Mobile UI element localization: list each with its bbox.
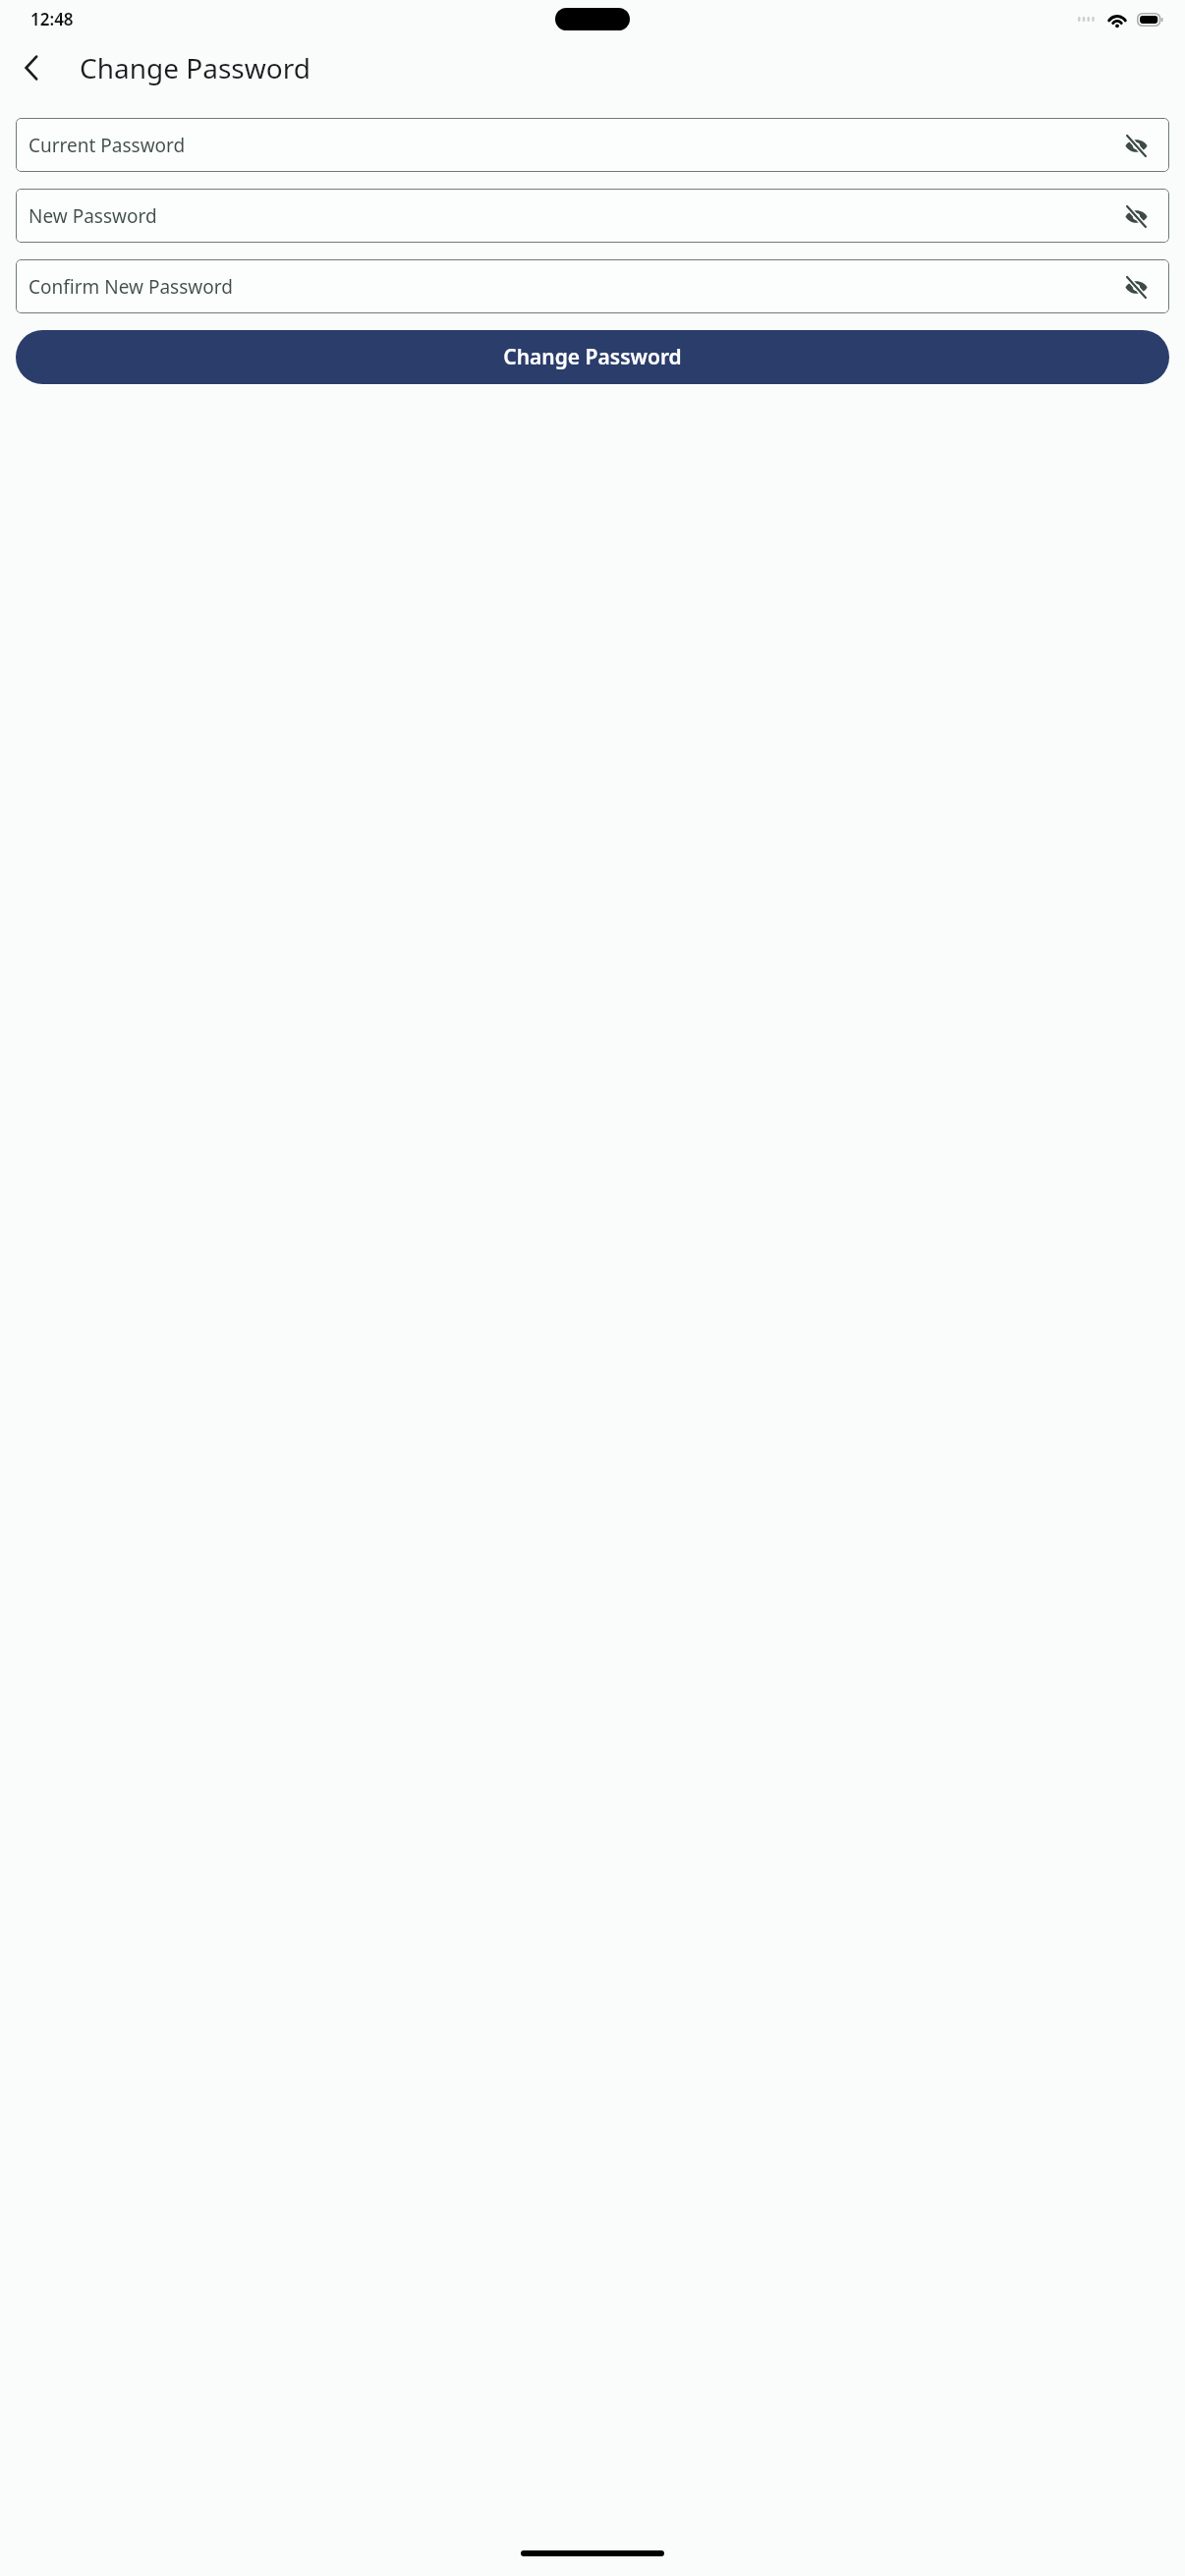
button[interactable]: Change Password xyxy=(16,330,1169,384)
staticText: Current Password xyxy=(28,133,1116,158)
button[interactable]: Show password xyxy=(1116,267,1156,307)
staticText: Confirm New Password xyxy=(28,274,1116,300)
button[interactable]: Back xyxy=(5,41,58,94)
staticText: 12:48 xyxy=(30,8,74,30)
button[interactable]: Confirm New Password xyxy=(16,259,1169,313)
button[interactable]: Show password xyxy=(1116,126,1156,165)
button[interactable]: Current Password xyxy=(16,118,1169,172)
staticText: Change Password xyxy=(503,343,682,371)
button[interactable]: New Password xyxy=(16,189,1169,243)
staticText: Change Password xyxy=(80,49,310,86)
staticText: New Password xyxy=(28,203,1116,229)
button[interactable]: Show password xyxy=(1116,196,1156,236)
